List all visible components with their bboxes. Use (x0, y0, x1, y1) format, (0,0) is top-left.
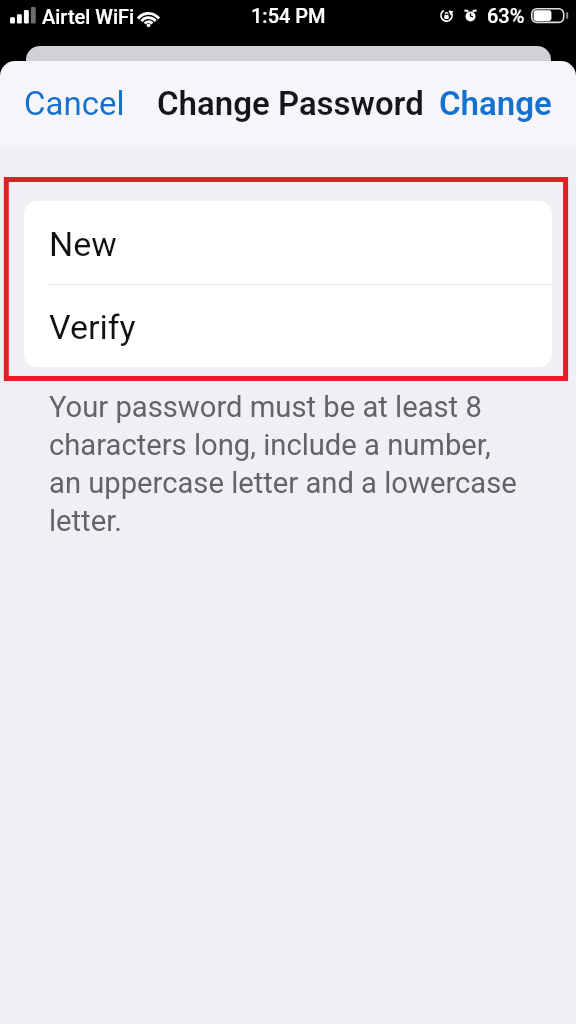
button[interactable]: Change (423, 78, 568, 129)
other: Cellular signal (10, 7, 36, 24)
other: Battery 63 percent (531, 8, 569, 25)
staticText: Change Password (157, 84, 424, 123)
button[interactable]: Cancel (8, 78, 141, 129)
staticText: Your password must be at least 8 charact… (49, 387, 520, 539)
other: Wi-Fi (135, 9, 162, 27)
staticText: Verify (49, 307, 136, 347)
other: Alarm (464, 8, 477, 23)
other: Rotation lock (440, 9, 453, 22)
staticText: Airtel WiFi (42, 5, 135, 28)
staticText: Cancel (24, 84, 125, 123)
button[interactable]: New (24, 201, 552, 284)
staticText: 1:54 PM (251, 4, 326, 27)
staticText: New (49, 224, 117, 264)
button[interactable]: Verify (24, 285, 552, 367)
staticText: 63% (487, 4, 525, 27)
staticText: Change (439, 84, 552, 123)
